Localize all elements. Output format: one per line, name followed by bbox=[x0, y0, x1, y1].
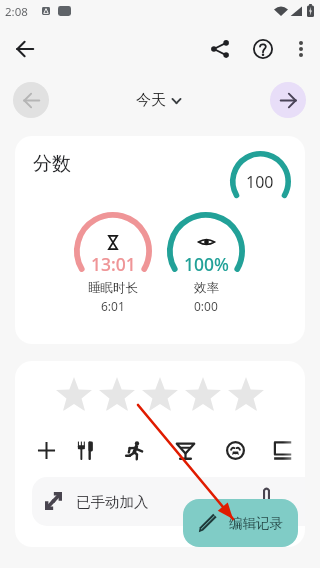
button[interactable]: 分数 bbox=[15, 136, 305, 344]
button[interactable]: Rate 2 stars bbox=[96, 373, 138, 413]
button[interactable]: Rate 5 stars bbox=[225, 373, 267, 413]
button[interactable]: Rate 3 stars bbox=[139, 373, 181, 413]
staticText: 2:08 bbox=[5, 4, 28, 20]
button[interactable]: tag 3 bbox=[117, 433, 151, 467]
staticText: 效率 bbox=[194, 280, 219, 296]
staticText: 今天 bbox=[136, 91, 166, 110]
button[interactable]: Rate 1 stars bbox=[53, 373, 95, 413]
staticText: 100% bbox=[184, 252, 229, 276]
staticText: 分数 bbox=[33, 152, 71, 176]
staticText: 已手动加入 bbox=[76, 493, 149, 511]
staticText: 13:01 bbox=[91, 252, 136, 276]
button[interactable]: More options bbox=[287, 32, 314, 66]
button[interactable]: 已手动加入 bbox=[32, 477, 305, 526]
button[interactable]: Help bbox=[245, 31, 281, 67]
button[interactable]: tag 1 bbox=[29, 433, 63, 467]
button[interactable]: Back bbox=[7, 31, 43, 67]
button[interactable]: Rate 4 stars bbox=[182, 373, 224, 413]
staticText: 100 bbox=[246, 171, 274, 193]
staticText: 0:00 bbox=[194, 298, 218, 314]
staticText: 编辑记录 bbox=[229, 515, 283, 532]
button[interactable]: tag 4 bbox=[168, 433, 202, 467]
staticText: 6:01 bbox=[101, 298, 125, 314]
button[interactable]: Previous day bbox=[13, 82, 49, 118]
button[interactable]: Share bbox=[202, 31, 238, 67]
button[interactable]: tag 6 bbox=[265, 433, 299, 467]
button[interactable]: Next day bbox=[270, 82, 306, 118]
button[interactable]: 编辑记录 bbox=[183, 499, 298, 547]
button[interactable]: tag 5 bbox=[218, 433, 252, 467]
button[interactable]: tag 2 bbox=[69, 433, 103, 467]
button[interactable]: 今天 bbox=[132, 88, 185, 113]
staticText: 睡眠时长 bbox=[88, 280, 138, 296]
